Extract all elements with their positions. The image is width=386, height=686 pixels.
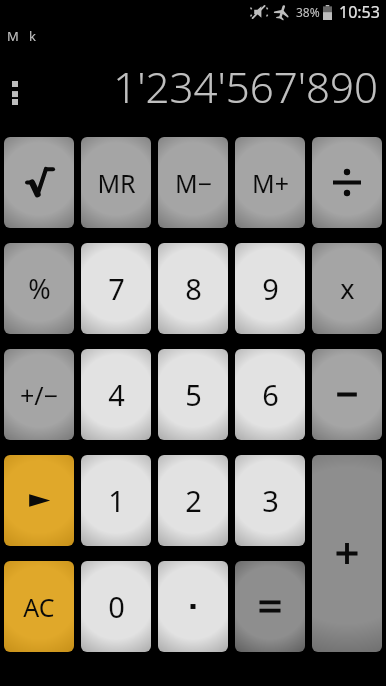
staticText: M− — [175, 166, 212, 200]
button[interactable]: Plus — [312, 455, 382, 652]
button[interactable]: 8 — [158, 243, 228, 334]
staticText: 4 — [108, 375, 125, 414]
button[interactable]: 6 — [235, 349, 305, 440]
button[interactable]: Divide — [312, 137, 382, 228]
staticText: 7 — [108, 269, 125, 308]
staticText: 5 — [185, 375, 202, 414]
staticText: 8 — [185, 269, 202, 308]
staticText: 1 — [108, 481, 125, 520]
button[interactable]: x — [312, 243, 382, 334]
staticText: M+ — [252, 166, 289, 200]
button[interactable]: +/− — [4, 349, 74, 440]
button[interactable]: AC — [4, 561, 74, 652]
staticText: M k — [7, 27, 36, 45]
staticText: 1'234'567'890 — [0, 58, 378, 115]
staticText: x — [340, 270, 355, 307]
button[interactable]: 2 — [158, 455, 228, 546]
button[interactable]: 7 — [81, 243, 151, 334]
staticText: 9 — [262, 269, 279, 308]
button[interactable]: More options — [2, 76, 28, 110]
button[interactable]: 5 — [158, 349, 228, 440]
staticText: 2 — [185, 481, 202, 520]
staticText: MR — [97, 166, 136, 200]
staticText: 3 — [262, 481, 279, 520]
button[interactable]: MR — [81, 137, 151, 228]
button[interactable]: M− — [158, 137, 228, 228]
button[interactable]: % — [4, 243, 74, 334]
button[interactable]: Decimal point — [158, 561, 228, 652]
staticText: 0 — [108, 587, 125, 626]
staticText: 6 — [262, 375, 279, 414]
staticText: AC — [23, 590, 55, 624]
staticText: 38% — [296, 4, 320, 20]
button[interactable]: Equals — [235, 561, 305, 652]
staticText: % — [28, 270, 51, 307]
button[interactable]: M+ — [235, 137, 305, 228]
button[interactable]: 3 — [235, 455, 305, 546]
button[interactable]: Square root — [4, 137, 74, 228]
button[interactable]: 0 — [81, 561, 151, 652]
button[interactable]: Minus — [312, 349, 382, 440]
staticText: 10:53 — [339, 1, 380, 23]
button[interactable]: 9 — [235, 243, 305, 334]
button[interactable]: 1 — [81, 455, 151, 546]
button[interactable]: Backspace — [4, 455, 74, 546]
staticText: +/− — [20, 378, 58, 412]
button[interactable]: 4 — [81, 349, 151, 440]
